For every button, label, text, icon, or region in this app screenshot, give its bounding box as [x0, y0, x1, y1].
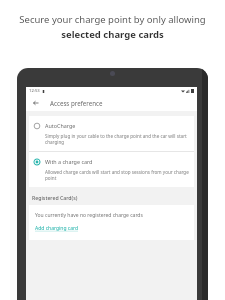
- button[interactable]: Add charging card: [35, 225, 79, 232]
- staticText: Add charging card: [35, 225, 79, 232]
- staticText: selected charge cards: [61, 28, 164, 41]
- staticText: With a charge card: [45, 158, 93, 165]
- staticText: Allowed charge cards will start and stop…: [45, 169, 189, 181]
- staticText: 12:53: [29, 88, 40, 94]
- staticText: Secure your charge point by only allowin…: [19, 13, 206, 26]
- button[interactable]: With a charge card: [29, 152, 194, 187]
- staticText: Simply plug in your cable to the charge …: [45, 133, 189, 145]
- staticText: Registered Card(s): [32, 194, 78, 201]
- staticText: Access preference: [50, 99, 103, 107]
- button[interactable]: Back: [31, 98, 41, 108]
- staticText: AutoCharge: [45, 122, 76, 129]
- staticText: You currently have no registered charge …: [35, 212, 143, 219]
- button[interactable]: AutoCharge: [29, 116, 194, 151]
